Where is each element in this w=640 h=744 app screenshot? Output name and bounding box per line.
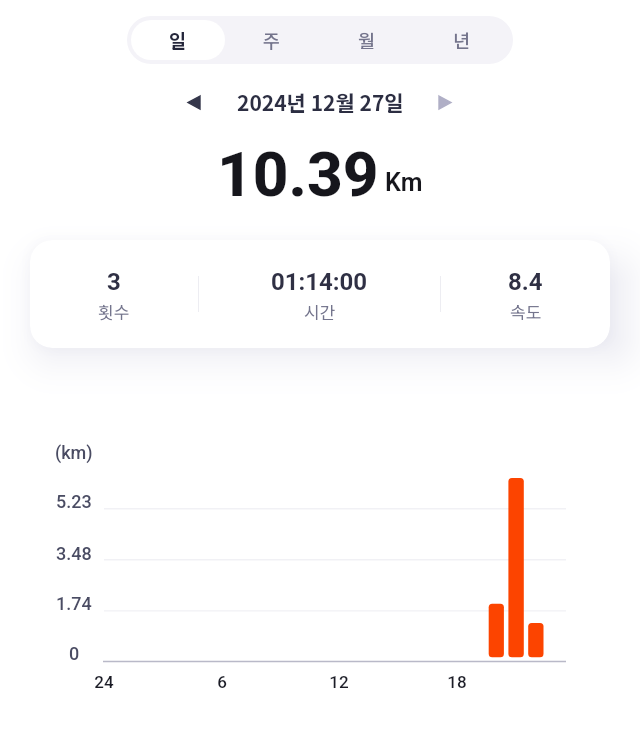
staticText: 1.74 — [56, 593, 92, 614]
button[interactable]: Next day — [429, 86, 461, 118]
staticText: 3.48 — [56, 543, 92, 564]
button[interactable]: 8.4 — [441, 240, 610, 348]
button[interactable]: 주 — [225, 20, 319, 60]
button[interactable]: 3 — [30, 240, 198, 348]
staticText: 5.23 — [56, 491, 92, 512]
staticText: (km) — [55, 442, 93, 463]
staticText: 3 — [107, 268, 121, 296]
staticText: 12 — [329, 672, 349, 692]
staticText: 시간 — [304, 299, 336, 324]
staticText: 일 — [169, 27, 187, 54]
staticText: 2024년 12월 27일 — [237, 87, 404, 117]
staticText: 8.4 — [508, 268, 543, 296]
staticText: 월 — [358, 27, 376, 54]
staticText: 18 — [447, 672, 467, 692]
staticText: 24 — [94, 672, 114, 692]
button[interactable]: 일 — [131, 20, 225, 60]
staticText: 속도 — [510, 299, 542, 324]
button[interactable]: 월 — [319, 20, 414, 60]
staticText: Km — [385, 168, 423, 197]
staticText: 년 — [453, 27, 471, 54]
staticText: 주 — [263, 27, 281, 54]
staticText: 횟수 — [98, 299, 130, 324]
staticText: 10.39 — [217, 138, 379, 202]
staticText: 01:14:00 — [271, 268, 368, 296]
staticText: 6 — [217, 672, 227, 692]
button[interactable]: Previous day — [178, 86, 210, 118]
button[interactable]: 01:14:00 — [199, 240, 440, 348]
staticText: 0 — [69, 643, 80, 664]
button[interactable]: 년 — [414, 20, 509, 60]
